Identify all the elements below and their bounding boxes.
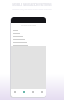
button[interactable] xyxy=(11,29,46,32)
staticText: MOBILE NAVIGATION PATTERNS xyxy=(12,3,52,7)
button[interactable] xyxy=(11,35,46,38)
button[interactable] xyxy=(11,44,46,46)
button[interactable]: Nav item xyxy=(37,89,46,97)
button[interactable] xyxy=(11,38,46,41)
button[interactable]: Nav item xyxy=(28,89,37,97)
staticText: bottom bar, list rows and a dark app bar xyxy=(12,8,52,11)
staticText: Section overview xyxy=(11,24,46,27)
button[interactable] xyxy=(11,41,46,44)
button[interactable] xyxy=(11,32,46,35)
button[interactable]: Nav item xyxy=(19,89,28,97)
button[interactable]: Nav item xyxy=(11,89,19,97)
